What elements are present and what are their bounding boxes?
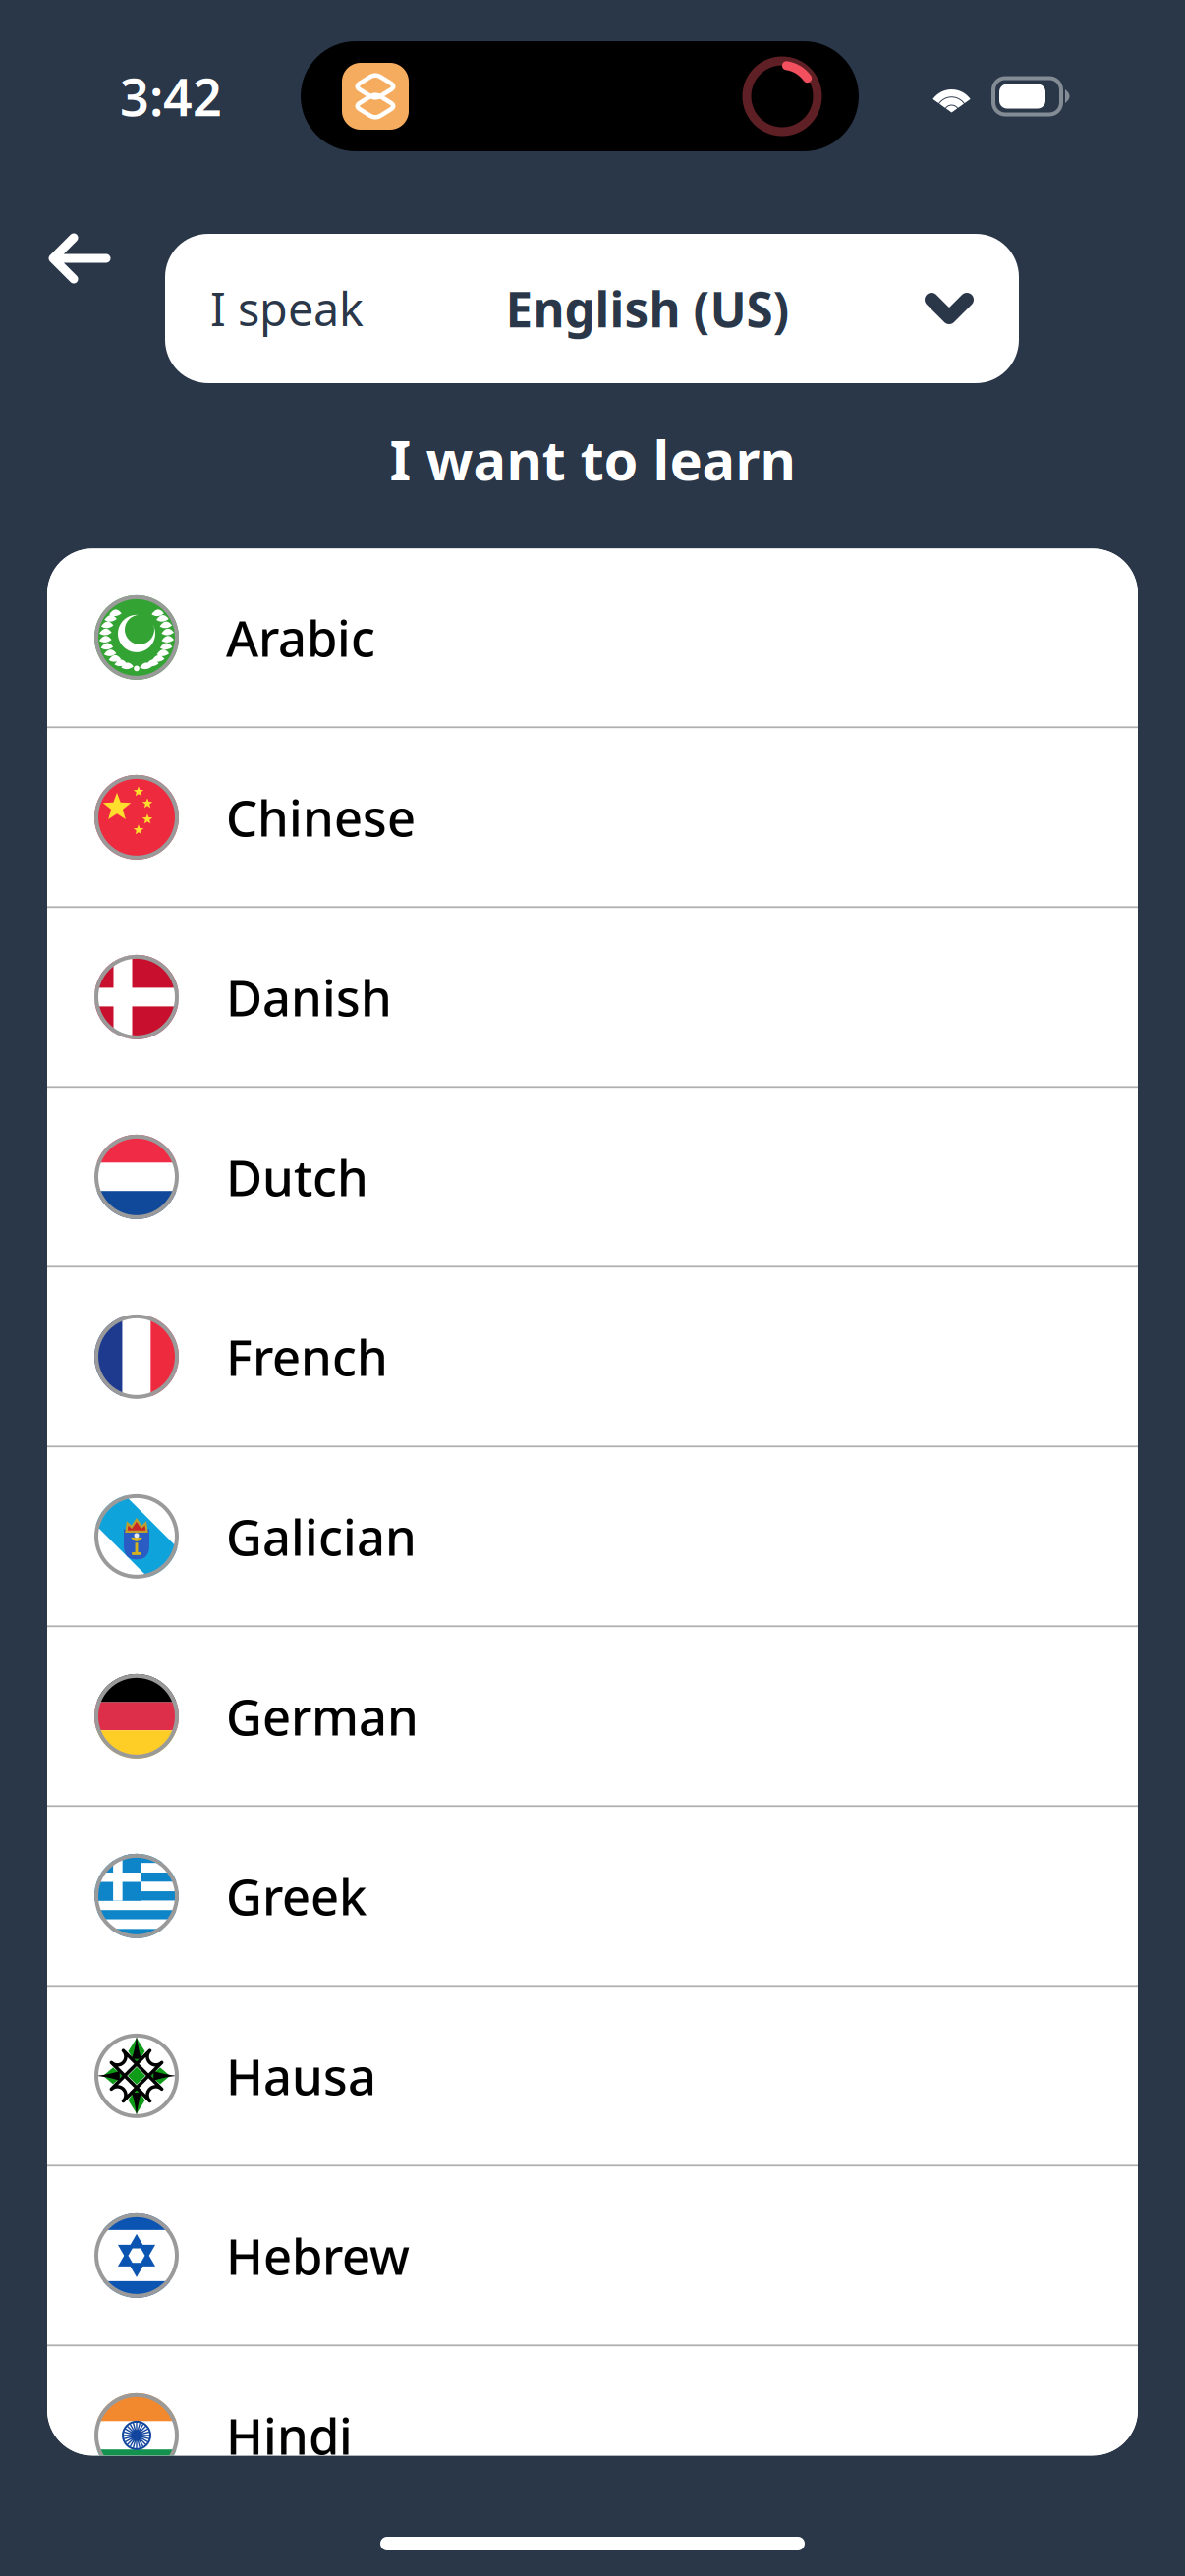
staticText: Hebrew [226,2223,410,2289]
staticText: Chinese [226,784,416,850]
button[interactable]: Dutch [47,1088,1138,1266]
staticText: Greek [226,1863,367,1929]
staticText: French [226,1324,388,1390]
staticText: Hausa [226,2043,376,2109]
button[interactable]: Hebrew [47,2167,1138,2345]
staticText: I want to learn [390,422,795,496]
button[interactable]: French [47,1268,1138,1446]
staticText: Dutch [226,1144,368,1210]
staticText: Arabic [226,604,375,671]
button[interactable]: Galician [47,1448,1138,1625]
staticText: 3:42 [120,62,222,130]
button[interactable]: I speak [165,234,1019,383]
button[interactable]: Hausa [47,1987,1138,2165]
button[interactable]: Arabic [47,549,1138,726]
button[interactable]: Danish [47,908,1138,1086]
staticText: German [226,1683,419,1749]
button[interactable]: Hindi [47,2346,1138,2524]
button[interactable]: Greek [47,1807,1138,1985]
staticText: Danish [226,964,392,1030]
button[interactable]: Chinese [47,728,1138,906]
staticText: Galician [226,1503,417,1569]
staticText: English (US) [506,276,790,341]
button[interactable]: Back [20,254,140,363]
staticText: I speak [210,278,364,339]
staticText: Hindi [226,2402,353,2468]
button[interactable]: German [47,1627,1138,1805]
